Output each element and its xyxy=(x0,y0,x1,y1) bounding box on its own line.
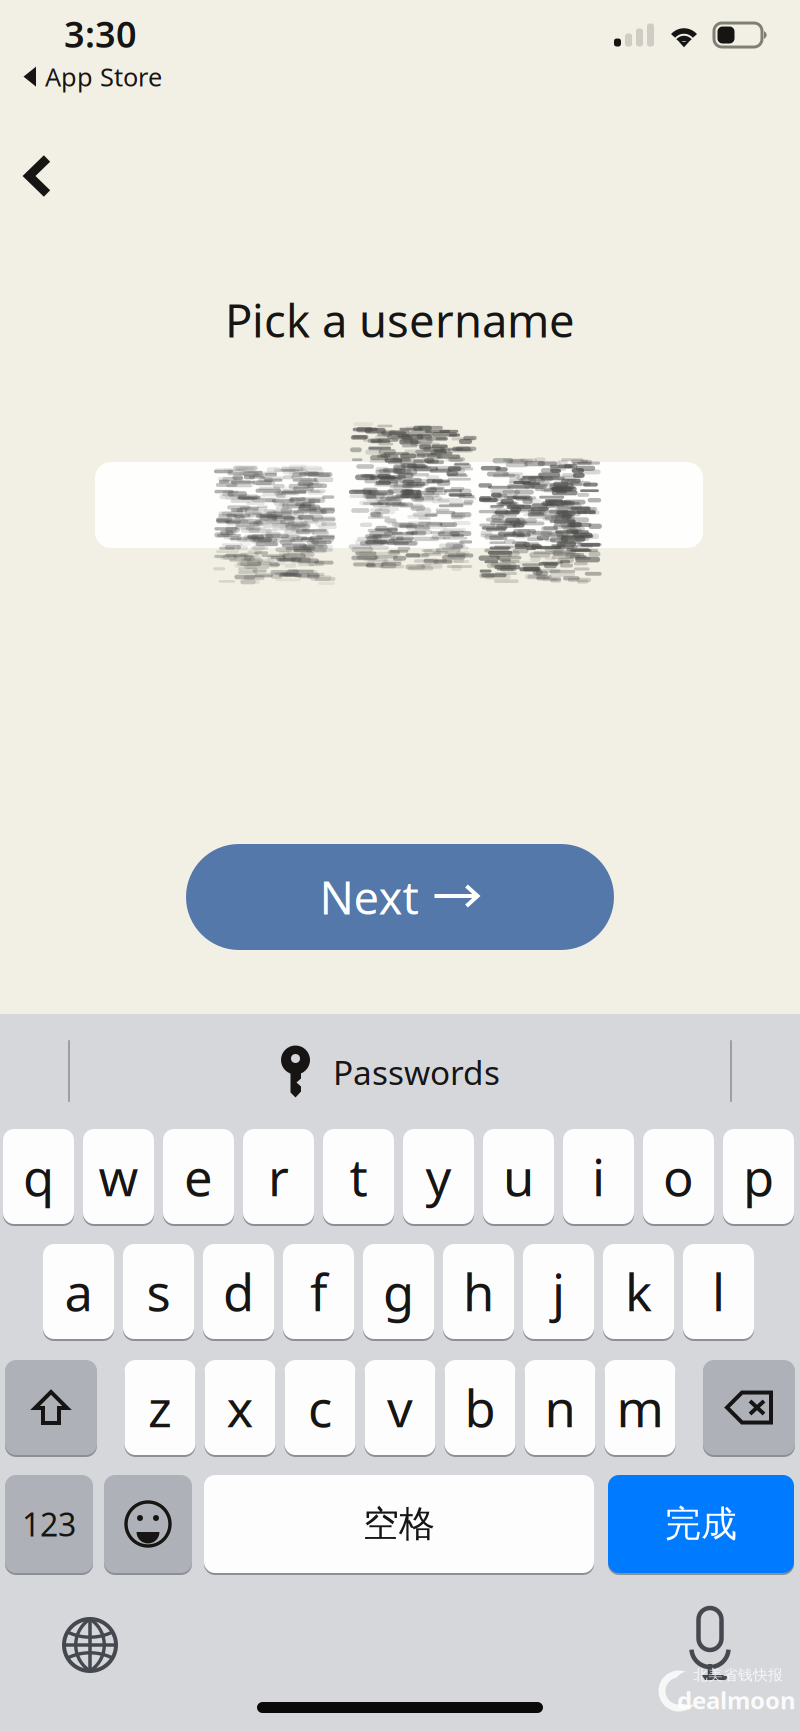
staticText: dealmoon xyxy=(677,1684,796,1716)
button[interactable]: 空格 xyxy=(204,1473,594,1575)
staticText: f xyxy=(310,1258,327,1325)
button[interactable]: Next keyboard xyxy=(45,1606,135,1684)
button[interactable]: q xyxy=(3,1127,74,1226)
button[interactable]: u xyxy=(483,1127,554,1226)
staticText: Pick a username xyxy=(225,290,575,350)
button[interactable]: b xyxy=(444,1358,515,1457)
button[interactable]: l xyxy=(683,1242,754,1341)
staticText: 空格 xyxy=(363,1502,435,1546)
button[interactable]: h xyxy=(443,1242,514,1341)
button[interactable]: z xyxy=(124,1358,195,1457)
staticText: k xyxy=(625,1258,652,1325)
staticText: l xyxy=(712,1258,725,1325)
staticText: q xyxy=(23,1143,54,1210)
staticText: a xyxy=(64,1258,92,1325)
button[interactable]: i xyxy=(563,1127,634,1226)
staticText: g xyxy=(383,1258,414,1325)
button[interactable]: Delete xyxy=(703,1358,795,1457)
button[interactable]: t xyxy=(323,1127,394,1226)
button[interactable]: g xyxy=(363,1242,434,1341)
staticText: z xyxy=(148,1374,172,1441)
button[interactable]: 123 xyxy=(5,1473,93,1575)
button[interactable]: 完成 xyxy=(608,1473,794,1575)
button[interactable]: Back xyxy=(0,138,76,214)
staticText: o xyxy=(663,1143,694,1210)
staticText: e xyxy=(184,1143,213,1210)
staticText: t xyxy=(349,1143,367,1210)
button[interactable]: Shift xyxy=(5,1358,97,1457)
staticText: s xyxy=(146,1258,170,1325)
button[interactable]: Passwords xyxy=(0,1034,800,1110)
staticText: j xyxy=(552,1258,565,1325)
button[interactable]: x xyxy=(204,1358,275,1457)
staticText: w xyxy=(98,1143,138,1210)
button[interactable]: Emoji xyxy=(104,1473,192,1575)
button[interactable]: n xyxy=(524,1358,595,1457)
staticText: m xyxy=(616,1374,663,1441)
button[interactable]: m xyxy=(604,1358,675,1457)
button[interactable]: s xyxy=(123,1242,194,1341)
button[interactable]: j xyxy=(523,1242,594,1341)
button[interactable]: v xyxy=(364,1358,435,1457)
staticText: v xyxy=(387,1374,413,1441)
staticText: p xyxy=(743,1143,774,1210)
button[interactable]: Dictation xyxy=(665,1606,755,1684)
button[interactable]: a xyxy=(43,1242,114,1341)
button[interactable]: Next xyxy=(186,844,614,950)
staticText: h xyxy=(463,1258,494,1325)
staticText: y xyxy=(425,1143,451,1210)
button[interactable]: k xyxy=(603,1242,674,1341)
button[interactable]: p xyxy=(723,1127,794,1226)
button[interactable]: c xyxy=(284,1358,355,1457)
button[interactable]: d xyxy=(203,1242,274,1341)
staticText: 北美省钱快报 xyxy=(693,1666,783,1684)
button[interactable]: e xyxy=(163,1127,234,1226)
staticText: b xyxy=(464,1374,495,1441)
button[interactable]: o xyxy=(643,1127,714,1226)
staticText: n xyxy=(544,1374,575,1441)
staticText: c xyxy=(308,1374,332,1441)
staticText: App Store xyxy=(45,60,162,93)
staticText: u xyxy=(503,1143,534,1210)
button[interactable]: f xyxy=(283,1242,354,1341)
button[interactable]: y xyxy=(403,1127,474,1226)
staticText: r xyxy=(268,1143,289,1210)
staticText: Next xyxy=(319,867,418,927)
staticText: 3:30 xyxy=(64,10,137,58)
staticText: i xyxy=(592,1143,605,1210)
staticText: 完成 xyxy=(665,1502,737,1546)
button[interactable]: r xyxy=(243,1127,314,1226)
staticText: x xyxy=(226,1374,253,1441)
staticText: d xyxy=(223,1258,254,1325)
staticText: Passwords xyxy=(333,1050,500,1094)
button[interactable]: w xyxy=(83,1127,154,1226)
staticText: 123 xyxy=(22,1503,76,1545)
button[interactable]: App Store xyxy=(0,60,162,93)
